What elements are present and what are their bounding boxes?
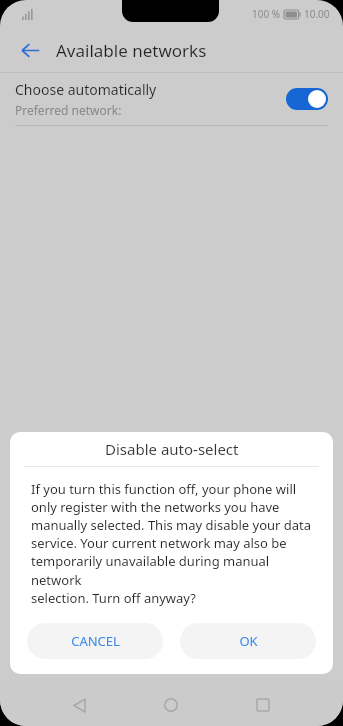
staticText: only register with the networks you have	[31, 498, 280, 516]
staticText: 10.00	[304, 7, 330, 21]
staticText: Choose automatically	[15, 80, 157, 99]
button[interactable]: Back	[10, 30, 50, 70]
button[interactable]: CANCEL	[27, 623, 163, 659]
button[interactable]: Back	[59, 685, 99, 725]
staticText: service. Your current network may also b…	[31, 534, 287, 552]
staticText: temporarily unavailable during manual ne…	[31, 552, 312, 589]
staticText: manually selected. This may disable your…	[31, 516, 312, 534]
button[interactable]: OK	[180, 623, 316, 659]
button[interactable]: Choose automatically	[0, 73, 343, 125]
staticText: Disable auto-select	[105, 439, 239, 459]
staticText: CANCEL	[71, 632, 120, 650]
button[interactable]: Recent apps	[243, 685, 283, 725]
staticText: If you turn this function off, your phon…	[31, 480, 297, 498]
staticText: 100 %	[252, 7, 281, 21]
staticText: Preferred network:	[15, 102, 122, 118]
staticText: selection. Turn off anyway?	[31, 589, 196, 607]
staticText: Available networks	[56, 39, 207, 62]
button[interactable]: Choose automatically toggle	[286, 88, 328, 110]
button[interactable]: Home	[151, 685, 191, 725]
staticText: OK	[239, 632, 258, 650]
